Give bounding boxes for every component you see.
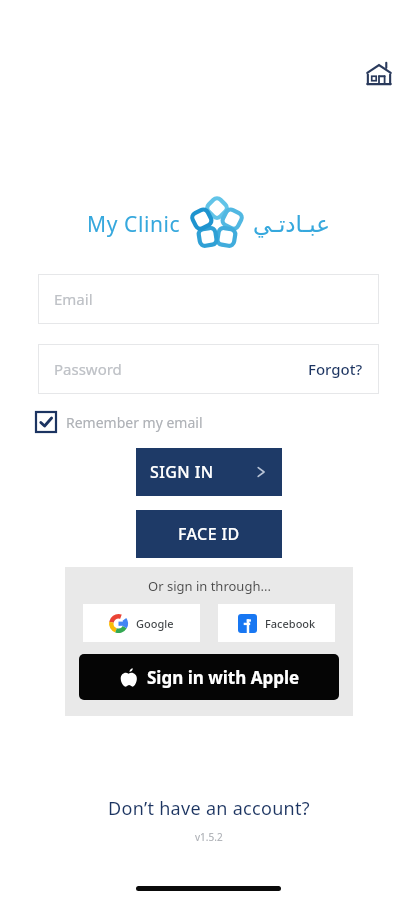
button[interactable]: Forgot? xyxy=(308,359,363,379)
button[interactable]: Google xyxy=(83,604,200,642)
staticText: Forgot? xyxy=(308,359,363,379)
staticText: FACE ID xyxy=(178,523,240,545)
staticText: Google xyxy=(136,616,174,631)
staticText: v1.5.2 xyxy=(195,830,223,844)
staticText: عبـادتـي xyxy=(253,211,330,238)
staticText: My Clinic xyxy=(87,210,181,239)
button[interactable]: Facebook xyxy=(218,604,335,642)
button[interactable]: SIGN IN xyxy=(136,448,282,496)
button[interactable]: Sign in with Apple xyxy=(79,654,339,700)
staticText: Sign in with Apple xyxy=(147,666,300,689)
button[interactable]: Home xyxy=(359,54,399,94)
button[interactable]: Don’t have an account? xyxy=(96,792,322,825)
staticText: SIGN IN xyxy=(150,461,214,483)
staticText: Or sign in through... xyxy=(148,577,271,595)
button[interactable]: Remember my email xyxy=(36,412,203,432)
staticText: Don’t have an account? xyxy=(108,796,310,821)
staticText: Remember my email xyxy=(66,413,203,432)
staticText: Password xyxy=(54,359,122,379)
staticText: Email xyxy=(54,289,93,309)
button[interactable]: FACE ID xyxy=(136,510,282,558)
staticText: Facebook xyxy=(265,616,316,631)
button[interactable]: Password xyxy=(38,344,379,394)
button[interactable]: Email xyxy=(38,274,379,324)
